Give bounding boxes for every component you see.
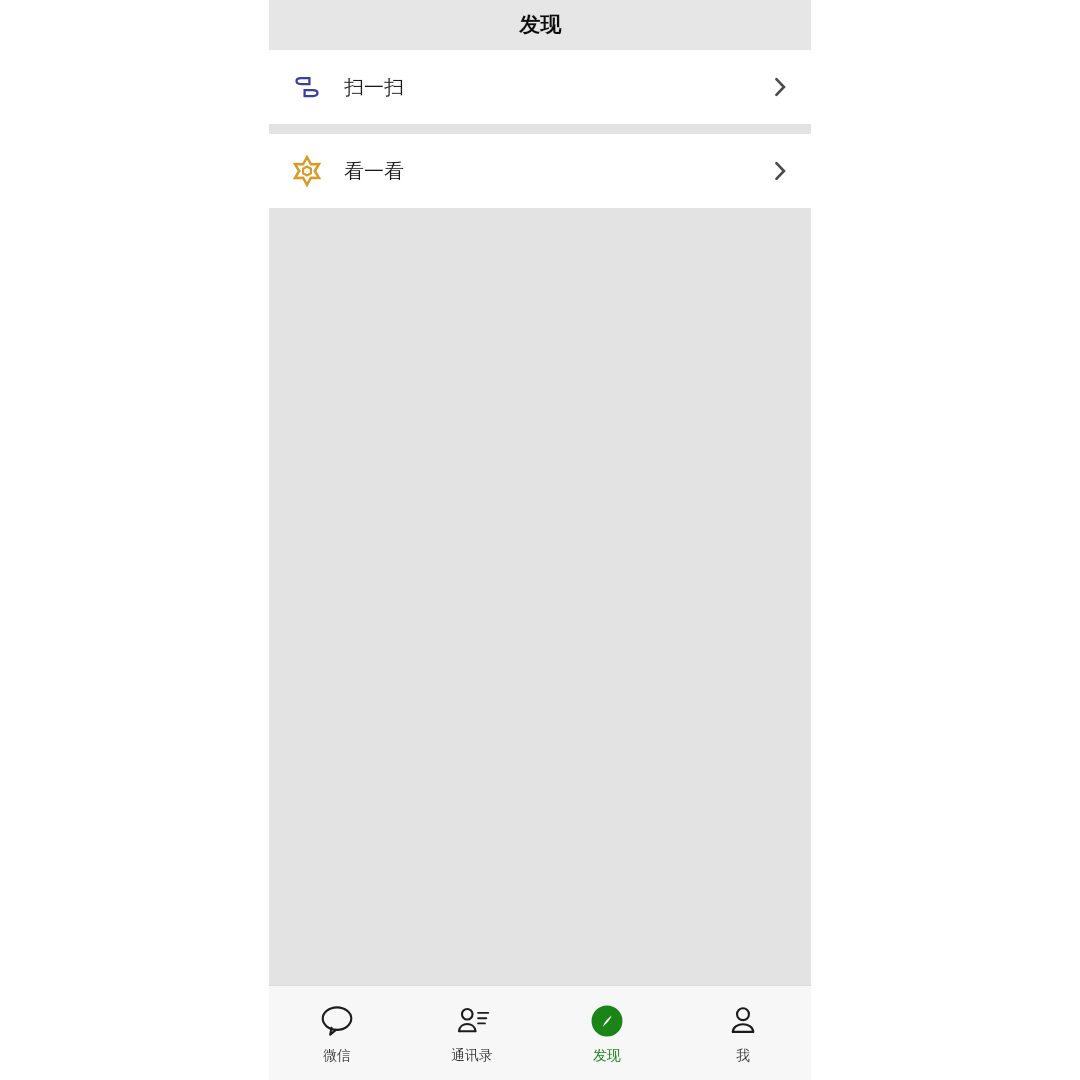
- staticText: 扫一扫: [344, 75, 404, 100]
- staticText: 发现: [593, 1047, 621, 1065]
- other: 扫一扫: [292, 72, 322, 102]
- button[interactable]: 发现: [539, 986, 675, 1080]
- staticText: 发现: [519, 12, 561, 38]
- staticText: 微信: [323, 1047, 351, 1065]
- button[interactable]: 扫一扫: [269, 50, 811, 124]
- staticText: 我: [736, 1047, 750, 1065]
- other: 发现: [590, 1004, 624, 1038]
- other: 通讯录: [455, 1004, 489, 1038]
- other: 微信: [320, 1004, 354, 1038]
- other: 我: [726, 1004, 760, 1038]
- staticText: 看一看: [344, 159, 404, 184]
- other: 看一看: [292, 156, 322, 186]
- button[interactable]: 看一看: [269, 134, 811, 208]
- staticText: 通讯录: [451, 1047, 493, 1065]
- button[interactable]: 通讯录: [404, 986, 539, 1080]
- button[interactable]: 微信: [269, 986, 404, 1080]
- button[interactable]: 我: [675, 986, 811, 1080]
